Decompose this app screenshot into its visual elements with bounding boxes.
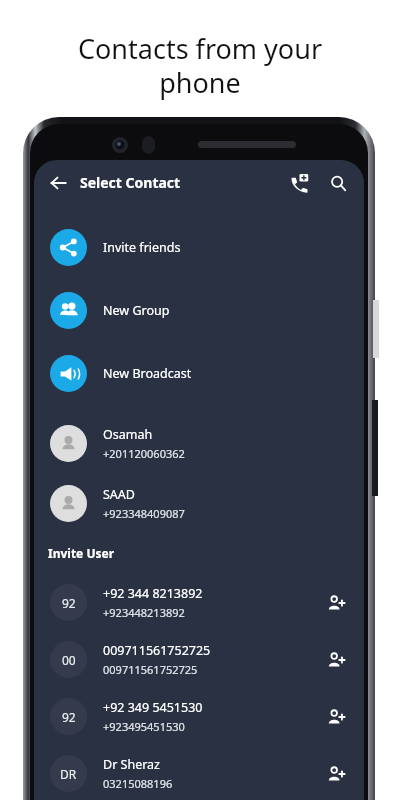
staticText: 009711561752725 [103,642,211,659]
button[interactable]: 92 [34,688,364,745]
staticText: +923348409087 [103,506,185,521]
staticText: Invite friends [103,239,181,256]
button[interactable]: Search [321,166,355,200]
button[interactable]: 92 [34,574,364,631]
button[interactable]: New Broadcast [34,342,364,405]
button[interactable]: Add contact [282,166,316,200]
staticText: 92 [62,595,76,611]
staticText: Osamah [103,426,153,443]
staticText: 03215088196 [103,776,173,791]
button[interactable]: Invite [321,588,351,618]
staticText: New Broadcast [103,365,192,382]
button[interactable]: DR [34,745,364,800]
staticText: New Group [103,302,170,319]
button[interactable]: New Group [34,279,364,342]
button[interactable]: Invite friends [34,216,364,279]
staticText: +923448213892 [103,605,185,620]
staticText: Contacts from your phone [0,30,400,101]
staticText: +923495451530 [103,719,185,734]
staticText: 009711561752725 [103,662,198,677]
staticText: +92 349 5451530 [103,699,203,716]
staticText: Select Contact [80,173,181,192]
staticText: DR [60,766,77,782]
button[interactable]: Osamah [34,413,364,473]
button[interactable]: Invite [321,702,351,732]
staticText: Dr Sheraz [103,756,160,773]
button[interactable]: Invite [321,759,351,789]
staticText: SAAD [103,486,135,503]
button[interactable]: Invite [321,645,351,675]
staticText: +201120060362 [103,446,185,461]
button[interactable]: SAAD [34,473,364,533]
staticText: Invite User [48,545,115,561]
button[interactable]: 00 [34,631,364,688]
staticText: 00 [62,652,76,668]
staticText: +92 344 8213892 [103,585,203,602]
button[interactable]: Back [41,166,75,200]
staticText: 92 [62,709,76,725]
